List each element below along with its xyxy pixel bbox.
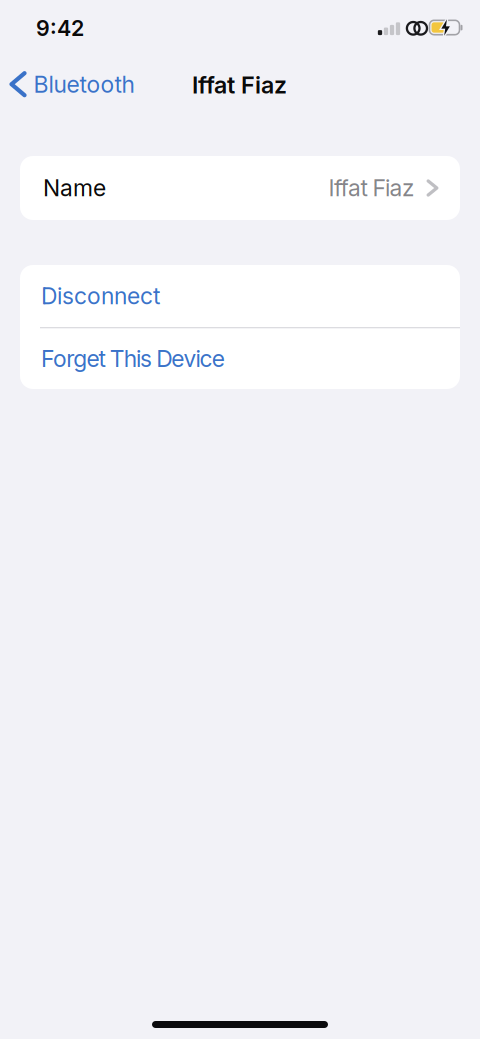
- staticText: Iffat Fiaz: [328, 174, 414, 202]
- staticText: Name: [43, 174, 106, 202]
- staticText: Forget This Device: [41, 345, 225, 372]
- staticText: Iffat Fiaz: [192, 71, 287, 99]
- staticText: Bluetooth: [33, 71, 134, 98]
- staticText: 9:42: [36, 15, 84, 41]
- staticText: Disconnect: [41, 282, 160, 310]
